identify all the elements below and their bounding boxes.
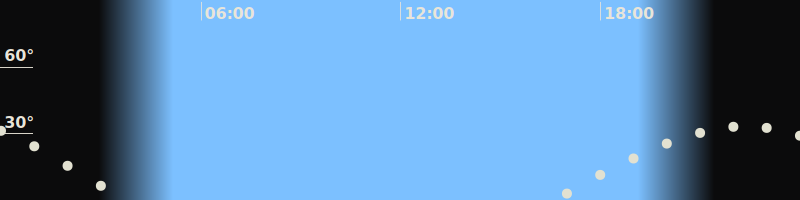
- staticText: 18:00: [604, 4, 654, 23]
- staticText: 06:00: [204, 4, 254, 23]
- staticText: 30°: [4, 113, 34, 132]
- staticText: 60°: [4, 46, 34, 65]
- staticText: 12:00: [404, 4, 454, 23]
